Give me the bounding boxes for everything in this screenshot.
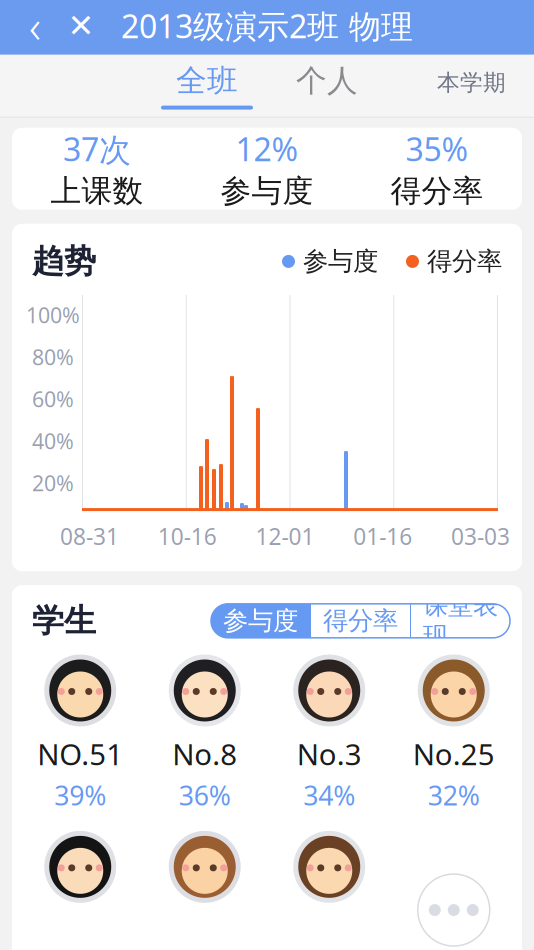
staticText: 60% bbox=[32, 385, 74, 413]
staticText: 37次 bbox=[63, 128, 131, 170]
staticText: 36% bbox=[179, 777, 231, 813]
button[interactable]: Close bbox=[58, 0, 104, 52]
button[interactable] bbox=[142, 831, 267, 950]
staticText: 参与度 bbox=[223, 605, 298, 636]
button[interactable]: More students bbox=[391, 874, 516, 946]
staticText: 10-16 bbox=[158, 521, 217, 551]
button[interactable]: No.3 bbox=[267, 654, 391, 813]
staticText: 12% bbox=[235, 128, 298, 170]
staticText: 得分率 bbox=[390, 172, 483, 210]
staticText: 40% bbox=[32, 427, 74, 455]
staticText: No.8 bbox=[172, 734, 237, 773]
button[interactable]: 个人 bbox=[267, 55, 387, 117]
staticText: NO.51 bbox=[37, 734, 123, 773]
button[interactable]: 参与度 bbox=[211, 604, 310, 638]
button[interactable]: 全班 bbox=[147, 55, 267, 117]
staticText: 2013级演示2班 物理 bbox=[121, 4, 413, 47]
staticText: 个人 bbox=[296, 62, 358, 100]
staticText: 本学期 bbox=[437, 69, 506, 97]
button[interactable] bbox=[18, 831, 142, 950]
button[interactable] bbox=[267, 831, 391, 950]
staticText: 03-03 bbox=[451, 521, 510, 551]
staticText: 35% bbox=[405, 128, 468, 170]
staticText: 100% bbox=[26, 301, 80, 329]
staticText: 01-16 bbox=[353, 521, 412, 551]
staticText: 趋势 bbox=[32, 242, 96, 281]
button[interactable]: No.25 bbox=[391, 654, 516, 813]
staticText: No.3 bbox=[297, 734, 362, 773]
button[interactable]: NO.51 bbox=[18, 654, 142, 813]
button[interactable]: Back bbox=[12, 0, 58, 52]
staticText: 32% bbox=[428, 777, 480, 813]
staticText: 参与度 bbox=[220, 172, 313, 210]
staticText: 学生 bbox=[32, 601, 96, 640]
button[interactable]: 得分率 bbox=[311, 604, 410, 638]
staticText: 20% bbox=[32, 469, 74, 497]
staticText: 得分率 bbox=[323, 605, 398, 636]
button[interactable]: 课堂表现 bbox=[411, 604, 510, 638]
staticText: 上课数 bbox=[50, 172, 143, 210]
staticText: 课堂表现 bbox=[423, 590, 498, 652]
staticText: 全班 bbox=[176, 62, 238, 100]
staticText: 得分率 bbox=[427, 246, 502, 277]
button[interactable]: No.8 bbox=[142, 654, 267, 813]
staticText: ‹ bbox=[29, 0, 41, 56]
staticText: 参与度 bbox=[303, 246, 378, 277]
staticText: 12-01 bbox=[255, 521, 314, 551]
staticText: ✕ bbox=[67, 8, 94, 44]
staticText: 34% bbox=[303, 777, 355, 813]
staticText: No.25 bbox=[413, 734, 495, 773]
staticText: 39% bbox=[54, 777, 106, 813]
staticText: 80% bbox=[32, 343, 74, 371]
staticText: 08-31 bbox=[60, 521, 119, 551]
button[interactable]: 本学期 bbox=[437, 69, 534, 103]
